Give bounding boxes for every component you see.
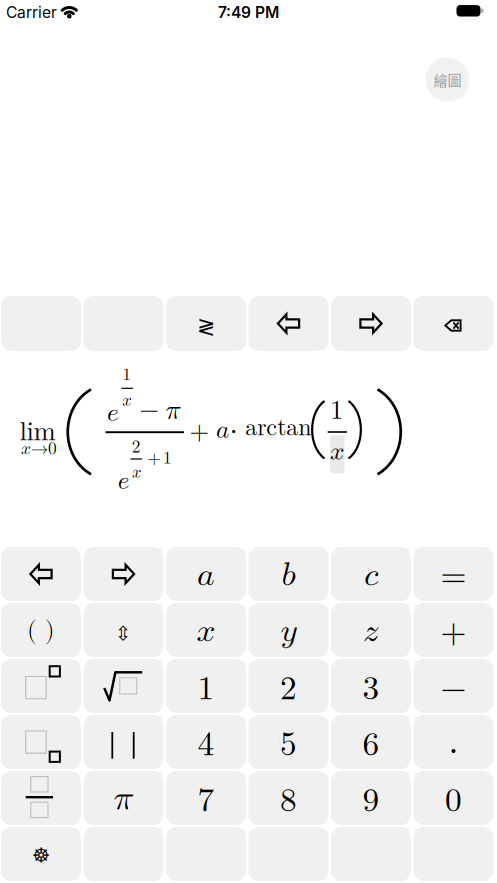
staticText: 𝜋 (165, 397, 180, 424)
button[interactable] (331, 547, 411, 601)
button[interactable]: Move right (331, 296, 411, 351)
button[interactable] (166, 603, 246, 657)
button[interactable]: Subscript (1, 715, 81, 769)
staticText: 0 (445, 784, 462, 818)
button[interactable] (166, 771, 246, 825)
button[interactable] (413, 659, 493, 713)
staticText: 1 (163, 449, 172, 467)
staticText: 𝑎 (197, 558, 215, 592)
staticText: = (440, 560, 466, 593)
button[interactable]: 繪圖 (425, 57, 469, 101)
button[interactable] (413, 547, 493, 601)
staticText: 2 (280, 672, 297, 706)
staticText: 𝑒 (107, 400, 119, 425)
staticText: 𝑥 (330, 439, 344, 464)
staticText: 1 (330, 397, 343, 424)
button[interactable] (1, 603, 81, 657)
staticText: 𝑥→0 (21, 440, 57, 458)
staticText: − (440, 672, 466, 705)
staticText: 𝑎 (216, 417, 229, 443)
button[interactable]: Power (1, 659, 81, 713)
staticText: ( ) (27, 618, 55, 643)
staticText: 𝑧 (363, 614, 379, 648)
staticText: 1 (197, 672, 214, 706)
button[interactable]: Move right (83, 547, 163, 601)
button[interactable]: Compare (166, 296, 246, 351)
button[interactable] (248, 659, 328, 713)
staticText: 5 (280, 728, 297, 762)
staticText: 𝑥 (196, 614, 215, 648)
staticText: + (189, 419, 209, 444)
button[interactable] (331, 715, 411, 769)
button[interactable] (248, 547, 328, 601)
staticText: 𝑥 (132, 464, 142, 481)
button[interactable] (166, 547, 246, 601)
staticText: 1 (122, 366, 131, 383)
button[interactable]: Resize (83, 603, 163, 657)
staticText: 𝑥 (122, 392, 132, 409)
staticText: 𝑦 (280, 614, 296, 648)
button[interactable]: Square root (83, 659, 163, 713)
button[interactable]: Move left (1, 547, 81, 601)
button[interactable] (248, 603, 328, 657)
button[interactable]: Move left (248, 296, 328, 351)
staticText: + (440, 616, 466, 649)
staticText: ☸ (32, 843, 50, 867)
button[interactable] (248, 771, 328, 825)
button[interactable] (331, 603, 411, 657)
staticText: 2 (132, 439, 141, 456)
staticText: arctan (245, 416, 311, 440)
button[interactable]: Delete (413, 296, 493, 351)
button[interactable] (166, 715, 246, 769)
staticText: 繪圖 (433, 69, 461, 90)
button[interactable] (166, 659, 246, 713)
staticText: 7 (197, 784, 214, 818)
button[interactable]: Absolute value (83, 715, 163, 769)
button[interactable] (248, 715, 328, 769)
button[interactable] (413, 771, 493, 825)
staticText: ⇳ (115, 622, 131, 645)
staticText: 9 (362, 784, 379, 818)
staticText: 6 (362, 728, 379, 762)
button[interactable]: Point (413, 715, 493, 769)
staticText: + (147, 450, 160, 467)
button[interactable] (413, 603, 493, 657)
staticText: 7:49 PM (218, 3, 279, 22)
button[interactable]: Fraction (1, 771, 81, 825)
staticText: 𝑐 (364, 558, 378, 592)
staticText: 8 (280, 784, 297, 818)
button[interactable] (83, 771, 163, 825)
button[interactable]: Settings (1, 827, 81, 881)
staticText: ≷ (197, 314, 215, 339)
button[interactable] (331, 771, 411, 825)
staticText: 3 (362, 672, 379, 706)
staticText: − (139, 397, 159, 423)
staticText: lim (20, 419, 56, 445)
staticText: 𝜋 (113, 782, 133, 816)
staticText: 𝑒 (118, 468, 130, 494)
staticText: 4 (197, 728, 214, 762)
staticText: Carrier (6, 3, 57, 22)
button[interactable] (331, 659, 411, 713)
staticText: 𝑏 (281, 558, 295, 592)
